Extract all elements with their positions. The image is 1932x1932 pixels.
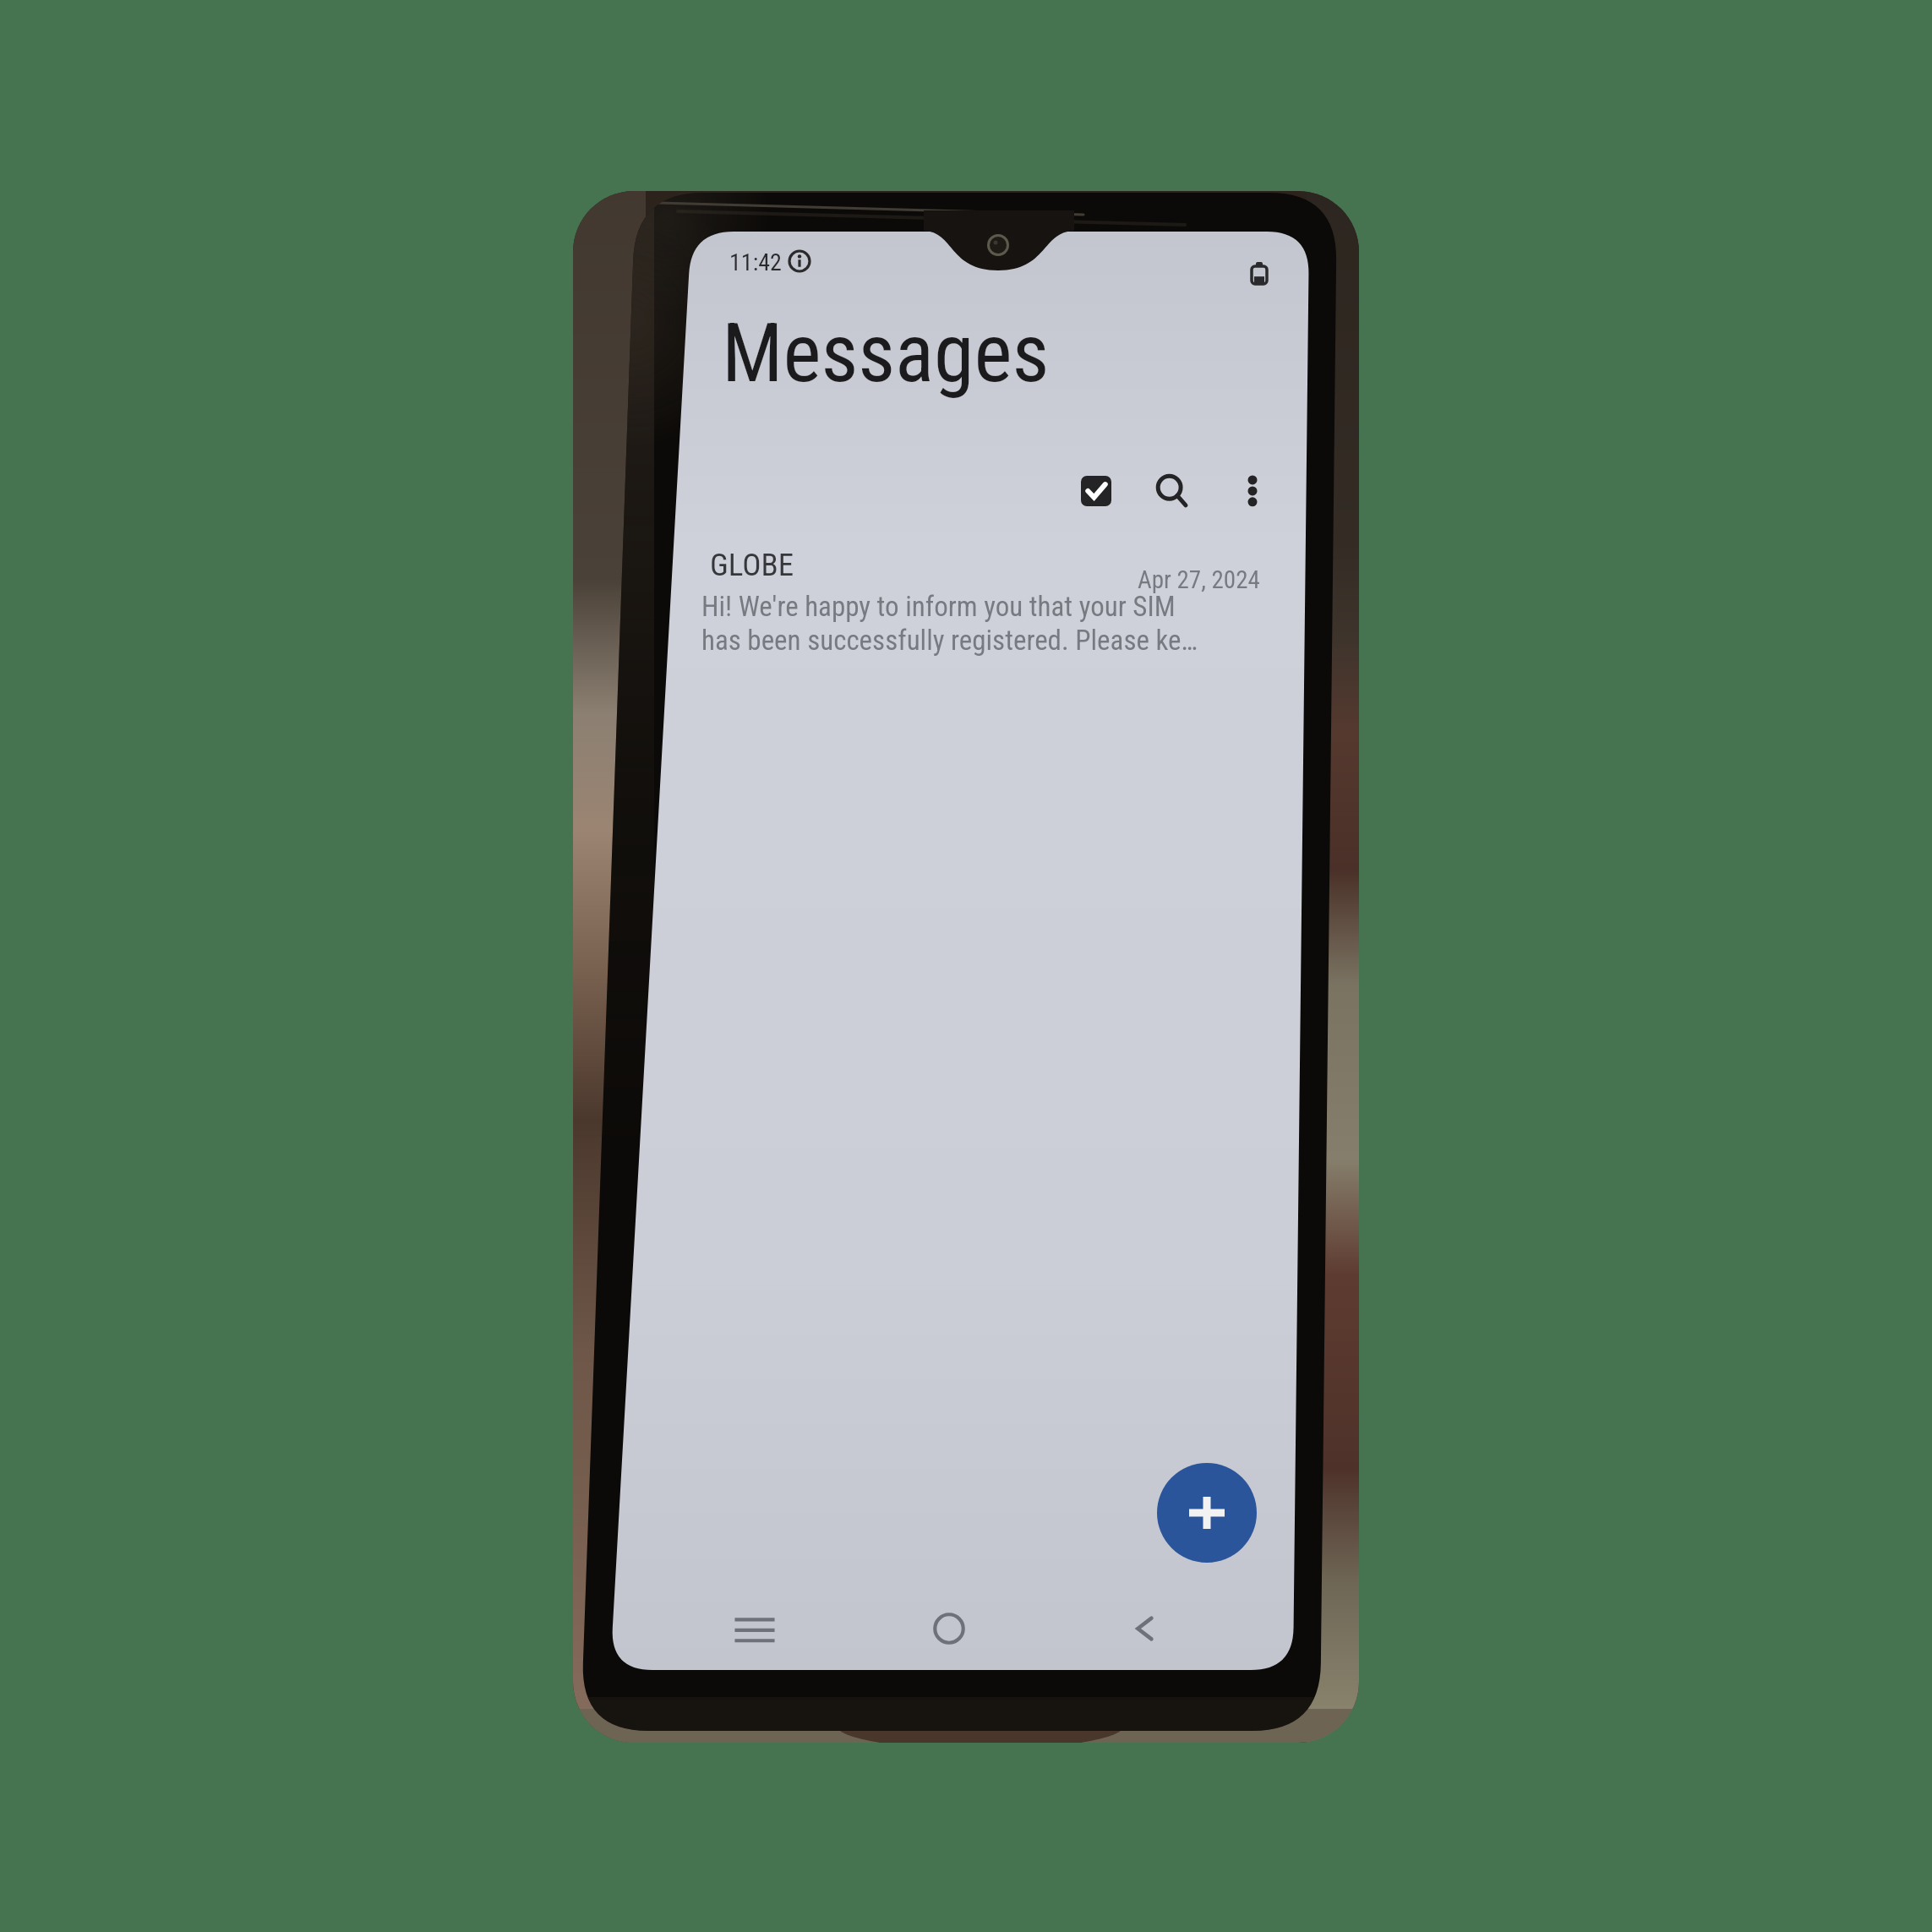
staticText: 11:42 [729, 248, 782, 276]
staticText: GLOBE [710, 547, 794, 583]
staticText: Messages [722, 306, 1050, 401]
button[interactable]: GLOBE [659, 541, 1302, 676]
button[interactable]: Search [1154, 473, 1190, 509]
button[interactable]: Back [1119, 1602, 1171, 1655]
button[interactable]: Select messages [1081, 476, 1111, 506]
staticText: Hi! We're happy to inform you that your … [701, 590, 1198, 657]
button[interactable]: More options [1237, 473, 1268, 504]
button[interactable]: Home [923, 1602, 975, 1655]
button[interactable]: Recent apps [729, 1602, 781, 1655]
button[interactable]: Start new conversation [1157, 1463, 1257, 1563]
staticText: Apr 27, 2024 [1138, 565, 1260, 594]
